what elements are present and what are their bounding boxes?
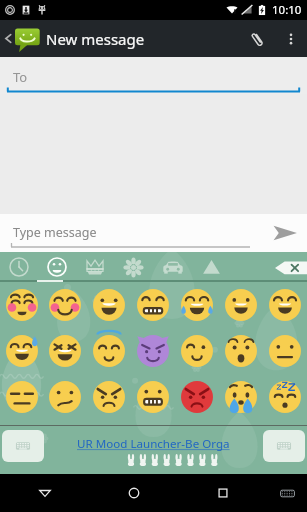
button[interactable]: Emoji 16 [87, 374, 131, 420]
button[interactable]: Emoji 4 [175, 282, 219, 328]
button[interactable]: Category 2 [38, 252, 76, 282]
button[interactable]: Switch keyboard [2, 430, 44, 462]
button[interactable]: Emoji 13 [263, 328, 307, 374]
button[interactable]: Category 3 [76, 252, 114, 282]
button[interactable]: Back [0, 474, 89, 512]
button[interactable]: Navigate up [0, 20, 42, 57]
button[interactable]: Emoji 1 [43, 282, 87, 328]
button[interactable]: Recent apps [178, 474, 267, 512]
button[interactable]: Attach [239, 21, 275, 57]
button[interactable]: UR Mood Launcher-Be Orga [77, 436, 230, 452]
staticText: New message [46, 29, 145, 49]
button[interactable]: Emoji 15 [43, 374, 87, 420]
staticText: Type message [13, 224, 97, 241]
button[interactable]: Home [89, 474, 178, 512]
button[interactable]: Emoji 20 [263, 374, 307, 420]
button[interactable]: Category 4 [114, 252, 153, 282]
button[interactable]: Emoji 12 [219, 328, 263, 374]
button[interactable]: Emoji 6 [263, 282, 307, 328]
button[interactable]: Emoji 17 [131, 374, 175, 420]
button[interactable]: Category 6 [192, 252, 231, 282]
button[interactable]: Emoji 19 [219, 374, 263, 420]
button[interactable]: Emoji 5 [219, 282, 263, 328]
button[interactable]: Emoji 18 [175, 374, 219, 420]
staticText: To [13, 68, 28, 86]
button[interactable]: Emoji 0 [0, 282, 43, 328]
button[interactable]: Switch keyboard [263, 430, 305, 462]
button[interactable]: Category 1 [0, 252, 38, 282]
button[interactable]: To [0, 57, 307, 94]
button[interactable]: Emoji 14 [0, 374, 43, 420]
button[interactable]: Emoji 8 [43, 328, 87, 374]
staticText: 10:10 [272, 2, 302, 18]
button[interactable]: Emoji 11 [175, 328, 219, 374]
button[interactable]: Keyboard [267, 474, 307, 512]
button[interactable]: Send [266, 214, 304, 252]
button[interactable]: More options [275, 23, 307, 55]
button[interactable]: Emoji 3 [131, 282, 175, 328]
button[interactable]: Category 5 [153, 252, 192, 282]
staticText: UR Mood Launcher-Be Orga [77, 436, 230, 452]
button[interactable]: Emoji 9 [87, 328, 131, 374]
button[interactable]: Emoji 2 [87, 282, 131, 328]
button[interactable]: Emoji 7 [0, 328, 43, 374]
button[interactable]: Emoji 10 [131, 328, 175, 374]
button[interactable]: Backspace [275, 252, 307, 282]
